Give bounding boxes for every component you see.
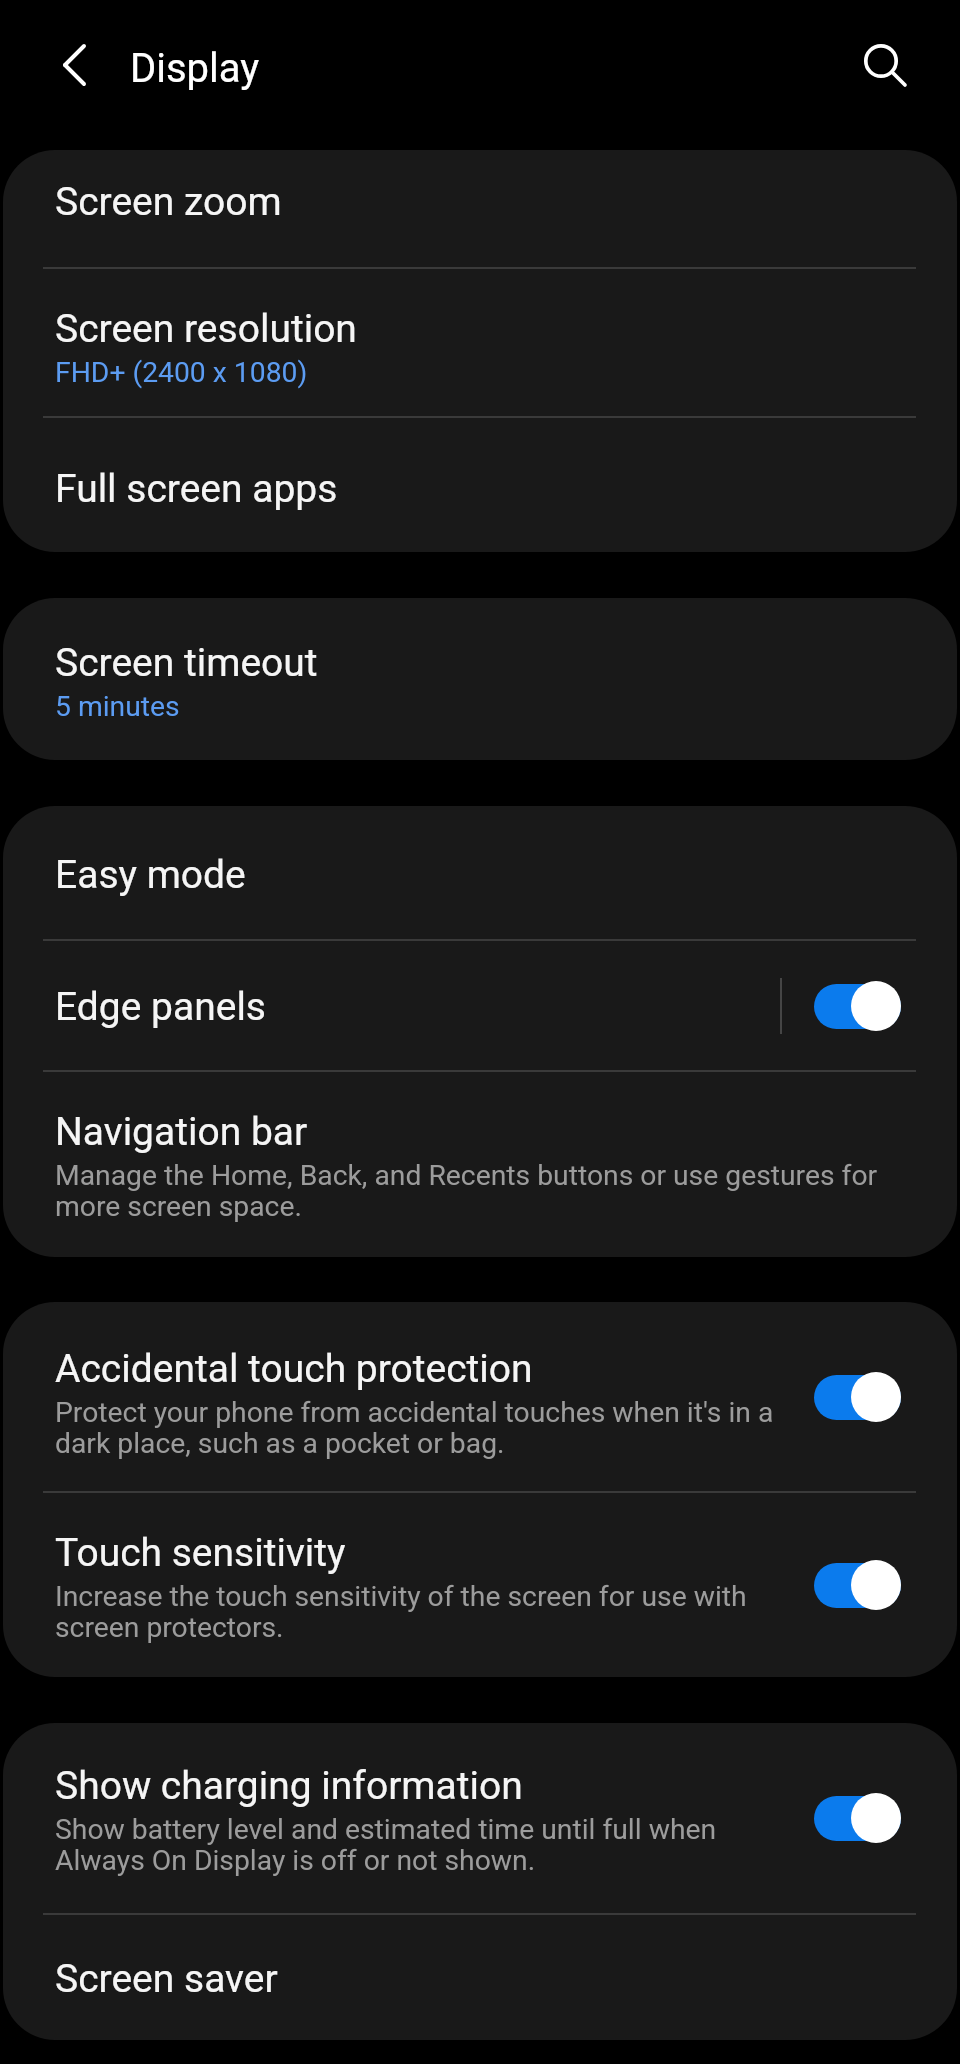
button[interactable]: Toggle on <box>814 981 901 1031</box>
button[interactable]: Show charging information <box>3 1723 957 1913</box>
staticText: Protect your phone from accidental touch… <box>55 1397 789 1459</box>
staticText: Accidental touch protection <box>55 1346 533 1391</box>
button[interactable]: Touch sensitivity <box>3 1493 957 1677</box>
staticText: Screen zoom <box>55 179 282 224</box>
button[interactable]: Navigation bar <box>3 1072 957 1257</box>
button[interactable]: Toggle on <box>814 1372 901 1422</box>
button[interactable]: Screen resolution <box>3 269 957 416</box>
staticText: Navigation bar <box>55 1109 308 1154</box>
staticText: FHD+ (2400 x 1080) <box>55 357 308 388</box>
staticText: Show charging information <box>55 1763 523 1808</box>
button[interactable]: Full screen apps <box>3 418 957 550</box>
staticText: Easy mode <box>55 852 246 897</box>
button[interactable]: Accidental touch protection <box>3 1302 957 1491</box>
button[interactable]: Toggle on <box>814 1793 901 1843</box>
staticText: Screen resolution <box>55 306 357 351</box>
staticText: Increase the touch sensitivity of the sc… <box>55 1581 789 1643</box>
staticText: Full screen apps <box>55 466 338 511</box>
button[interactable]: Back <box>34 26 116 108</box>
button[interactable]: Easy mode <box>3 806 957 939</box>
button[interactable]: Screen timeout <box>3 598 957 760</box>
staticText: 5 minutes <box>55 691 180 722</box>
staticText: Display <box>130 45 260 92</box>
staticText: Screen saver <box>55 1956 278 2001</box>
staticText: Show battery level and estimated time un… <box>55 1814 789 1876</box>
staticText: Edge panels <box>55 984 266 1029</box>
button[interactable]: Toggle on <box>814 1560 901 1610</box>
button[interactable]: Edge panels <box>3 941 957 1070</box>
button[interactable]: Search <box>859 22 941 104</box>
button[interactable]: Screen saver <box>3 1915 957 2040</box>
button[interactable]: Screen zoom <box>3 150 957 267</box>
staticText: Manage the Home, Back, and Recents butto… <box>55 1160 909 1222</box>
staticText: Screen timeout <box>55 640 318 685</box>
staticText: Touch sensitivity <box>55 1530 346 1575</box>
